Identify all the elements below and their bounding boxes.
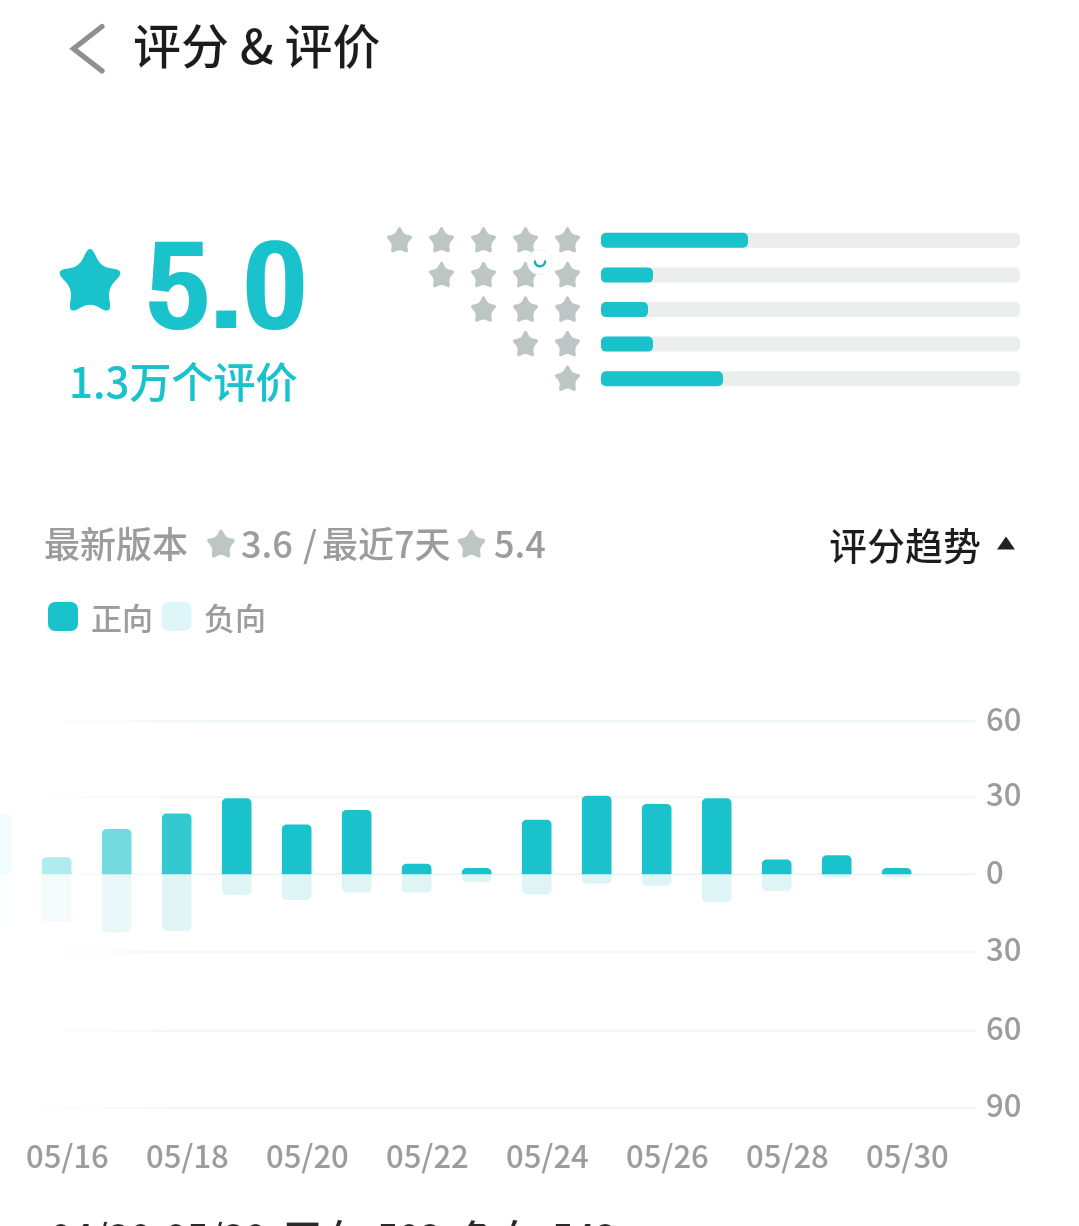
button[interactable]: 评分趋势 — [820, 514, 1028, 570]
button[interactable]: Back — [58, 16, 124, 82]
